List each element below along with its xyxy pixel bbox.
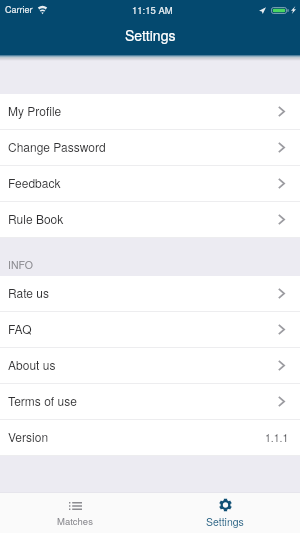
staticText: 1.1.1 bbox=[265, 430, 289, 445]
staticText: Rate us bbox=[8, 284, 49, 301]
button[interactable]: Matches bbox=[0, 493, 150, 533]
button[interactable]: FAQ bbox=[0, 312, 300, 348]
button[interactable]: Settings bbox=[150, 493, 300, 533]
button[interactable]: My Profile bbox=[0, 94, 300, 130]
button[interactable]: Feedback bbox=[0, 166, 300, 202]
staticText: FAQ bbox=[8, 320, 32, 337]
staticText: INFO bbox=[8, 257, 33, 272]
button[interactable]: Terms of use bbox=[0, 384, 300, 420]
staticText: Change Password bbox=[8, 138, 106, 155]
button[interactable]: About us bbox=[0, 348, 300, 384]
staticText: Matches bbox=[57, 514, 93, 528]
staticText: Version bbox=[8, 428, 49, 445]
button[interactable]: Version bbox=[0, 420, 300, 456]
staticText: Carrier bbox=[5, 3, 33, 16]
staticText: Settings bbox=[206, 514, 244, 529]
staticText: 11:15 AM bbox=[132, 3, 173, 17]
staticText: Feedback bbox=[8, 174, 61, 191]
staticText: Settings bbox=[125, 25, 176, 45]
button[interactable]: Rate us bbox=[0, 276, 300, 312]
staticText: Terms of use bbox=[8, 392, 77, 409]
button[interactable]: Rule Book bbox=[0, 202, 300, 238]
staticText: Rule Book bbox=[8, 210, 64, 227]
button[interactable]: Change Password bbox=[0, 130, 300, 166]
staticText: About us bbox=[8, 356, 56, 373]
staticText: My Profile bbox=[8, 102, 62, 119]
